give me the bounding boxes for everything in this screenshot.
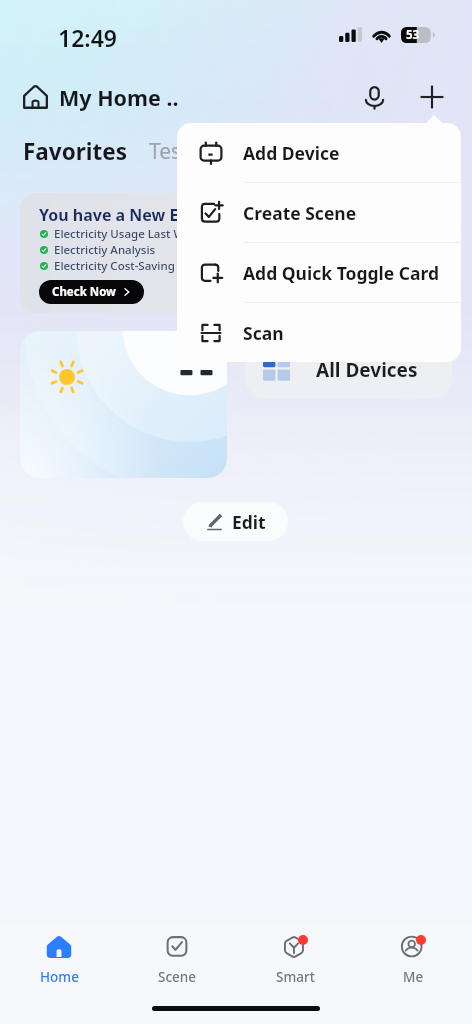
staticText: 53 xyxy=(406,27,420,43)
staticText: Add Device xyxy=(243,141,340,165)
staticText: Scene xyxy=(158,968,197,986)
button[interactable]: Add Device xyxy=(177,123,461,182)
button[interactable]: Add xyxy=(412,78,452,116)
button[interactable]: My Home .. xyxy=(22,83,179,112)
staticText: Check Now xyxy=(52,284,116,300)
button[interactable]: Voice assistant xyxy=(354,78,394,116)
staticText: Edit xyxy=(232,510,266,534)
staticText: Electricity Usage Last Week xyxy=(54,226,204,242)
button[interactable]: Smart xyxy=(236,934,354,1000)
button[interactable]: Edit xyxy=(183,502,288,541)
button[interactable]: Me xyxy=(354,934,472,1000)
staticText: My Home .. xyxy=(59,83,179,112)
button[interactable]: Test xyxy=(149,138,189,167)
staticText: Scan xyxy=(243,321,284,345)
button[interactable]: Check Now xyxy=(39,280,144,304)
button[interactable]: Scene xyxy=(118,934,236,1000)
staticText: Me xyxy=(403,968,424,986)
button[interactable] xyxy=(20,331,227,478)
staticText: 12:49 xyxy=(58,22,117,53)
button[interactable]: Favorites xyxy=(23,136,128,167)
staticText: Home xyxy=(40,968,79,986)
button[interactable]: All Devices xyxy=(245,331,452,398)
staticText: You have a New Energy Report xyxy=(39,204,284,226)
button[interactable]: Create Scene xyxy=(177,183,461,242)
staticText: Electrictiy Analysis xyxy=(54,242,156,258)
button[interactable]: Scan xyxy=(177,303,461,362)
staticText: Smart xyxy=(276,968,315,986)
staticText: Electricity Cost-Saving Plan xyxy=(54,258,202,274)
staticText: Add Quick Toggle Card xyxy=(243,261,440,285)
button[interactable]: Home xyxy=(0,934,118,1000)
button[interactable]: Add Quick Toggle Card xyxy=(177,243,461,302)
staticText: Create Scene xyxy=(243,201,357,225)
button[interactable]: You have a New Energy Report xyxy=(20,193,452,313)
staticText: All Devices xyxy=(316,357,418,383)
